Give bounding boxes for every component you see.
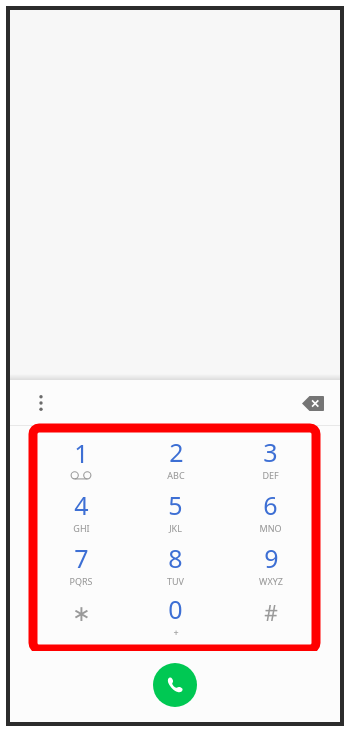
staticText: +	[173, 626, 179, 638]
button[interactable]: 9	[223, 537, 318, 590]
staticText: JKL	[169, 522, 182, 534]
button[interactable]: 2	[128, 432, 223, 484]
staticText: 6	[263, 488, 278, 522]
staticText: TUV	[167, 575, 184, 587]
button[interactable]: 8	[128, 537, 223, 590]
button[interactable]: #	[223, 590, 318, 643]
button[interactable]: Backspace	[294, 384, 332, 422]
button[interactable]: 6	[223, 484, 318, 537]
staticText: ∗	[72, 601, 91, 627]
button[interactable]: 0	[128, 590, 223, 643]
button[interactable]: 4	[34, 484, 128, 537]
staticText: 7	[74, 541, 89, 575]
button[interactable]: Call	[153, 663, 197, 707]
staticText: 8	[168, 541, 183, 575]
button[interactable]: 3	[223, 432, 318, 484]
staticText: 9	[264, 541, 279, 575]
staticText: 0	[168, 592, 183, 626]
staticText: WXYZ	[259, 575, 283, 587]
staticText: 4	[74, 488, 89, 522]
button[interactable]: 5	[128, 484, 223, 537]
button[interactable]: 7	[34, 537, 128, 590]
staticText: #	[264, 599, 278, 628]
staticText: 5	[168, 488, 183, 522]
staticText: GHI	[73, 522, 90, 534]
button[interactable]: More options	[24, 386, 58, 420]
staticText: DEF	[262, 469, 279, 481]
button[interactable]: ∗	[34, 590, 128, 643]
staticText: 2	[169, 435, 184, 469]
staticText: 3	[263, 435, 278, 469]
staticText: ABC	[167, 469, 185, 481]
staticText: PQRS	[69, 575, 93, 587]
staticText: 1	[74, 436, 89, 470]
staticText: MNO	[259, 522, 282, 534]
button[interactable]: 1	[34, 432, 128, 484]
